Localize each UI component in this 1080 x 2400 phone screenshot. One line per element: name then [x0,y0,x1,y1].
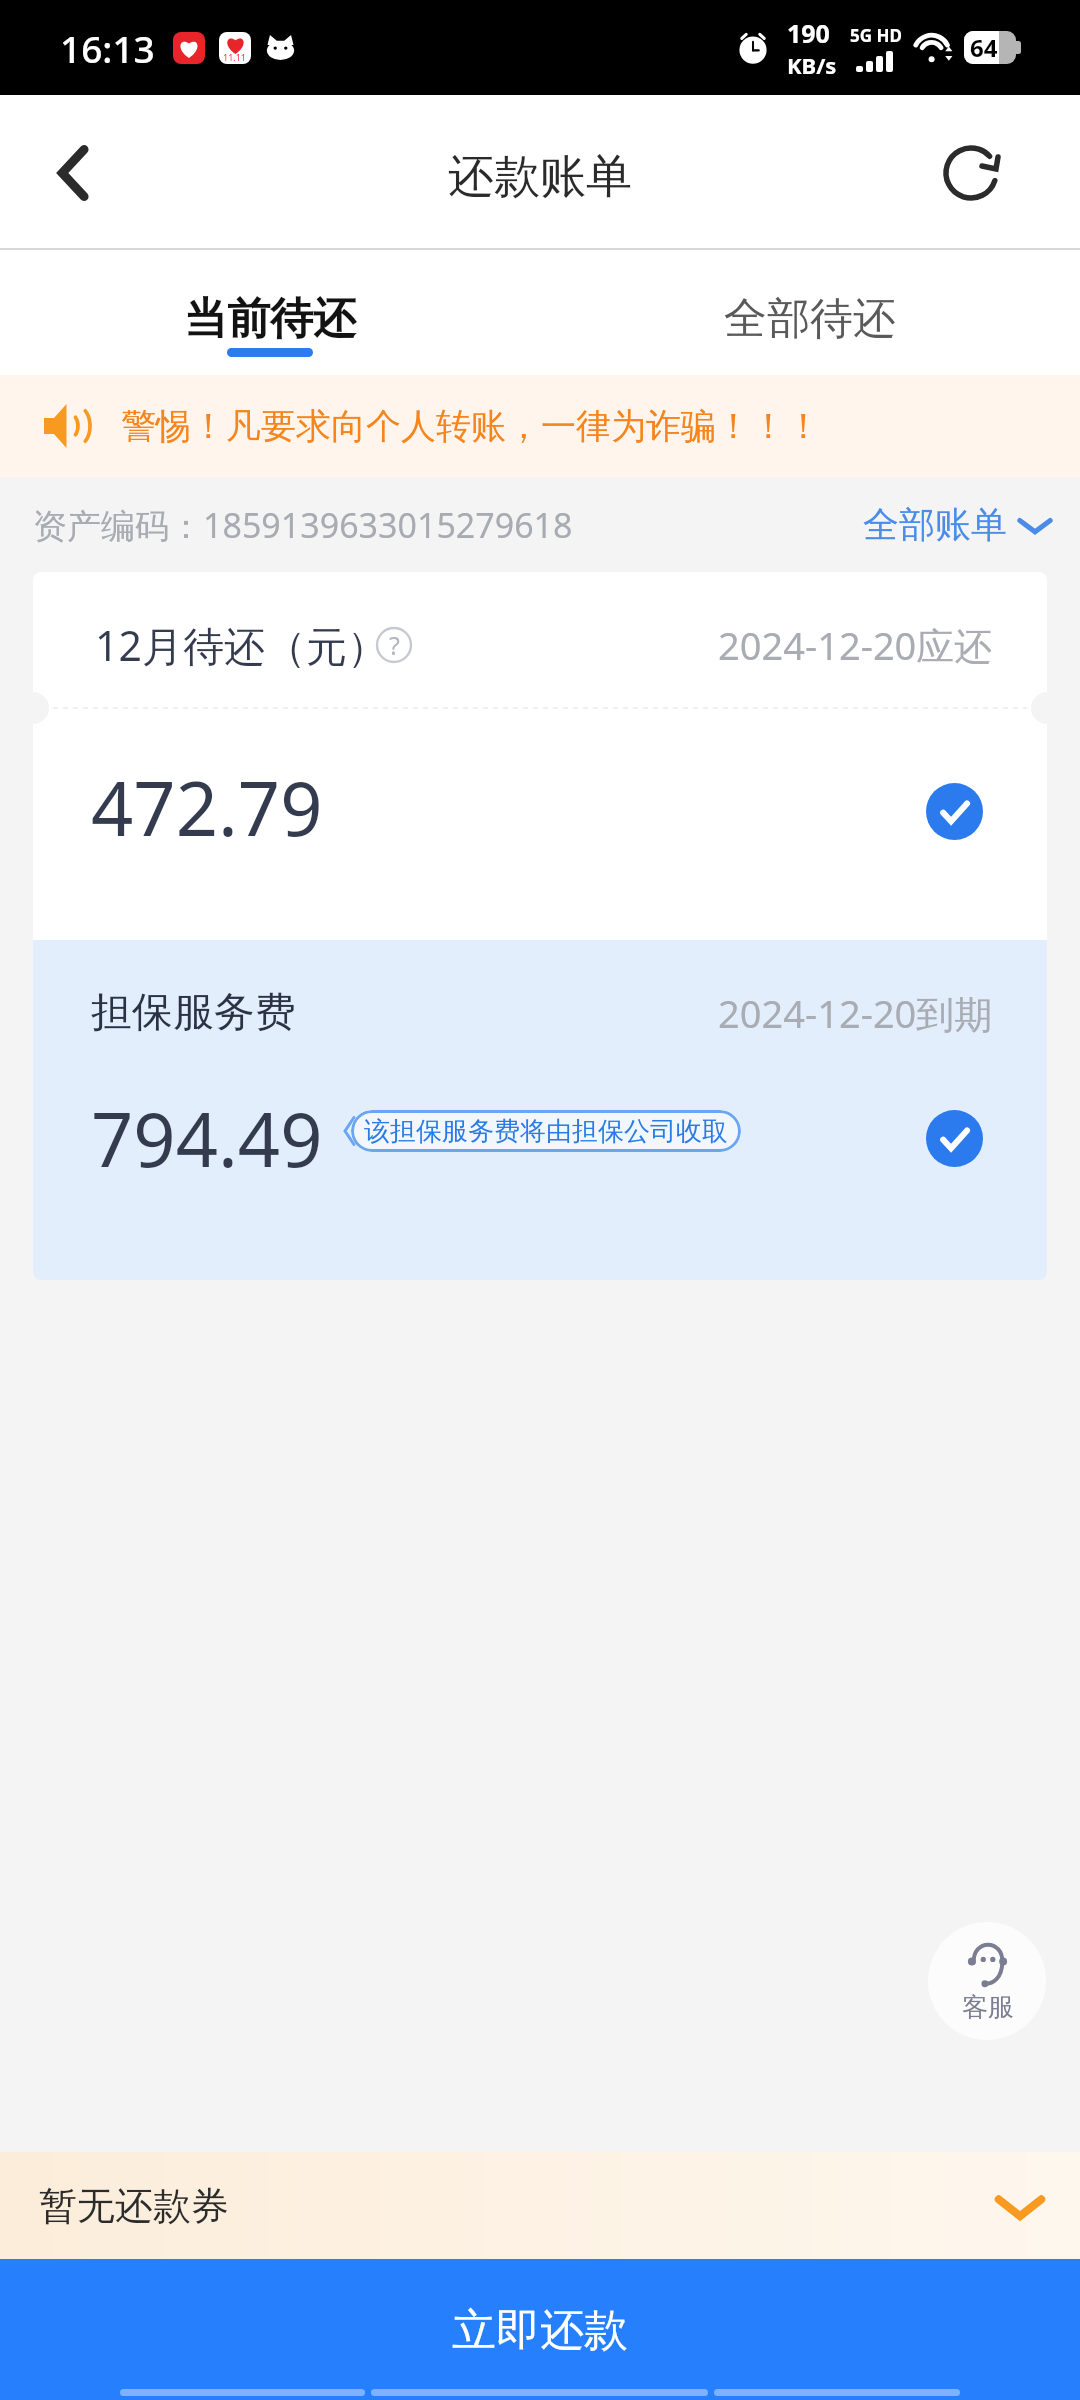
button[interactable]: 暂无还款券 [0,2152,1080,2259]
staticText: KB/s [787,50,837,80]
staticText: 资产编码：1859139633015279618 [33,502,573,548]
button[interactable]: 全部账单 [863,502,1054,547]
staticText: 该担保服务费将由担保公司收取 [364,1115,728,1148]
button[interactable]: 全部待还 [540,250,1080,375]
staticText: 暂无还款券 [39,2182,229,2230]
button[interactable]: 当前待还 [0,250,540,375]
staticText: 立即还款 [452,2303,628,2358]
staticText: 5G HD [850,24,902,47]
staticText: 472.79 [91,757,323,858]
staticText: 全部待还 [724,292,896,346]
staticText: 当前待还 [184,292,356,346]
button[interactable]: 12月待还（元） [33,572,1047,940]
staticText: 警惕！凡要求向个人转账，一律为诈骗！！！ [121,404,821,448]
button[interactable]: 担保服务费 [33,940,1047,1280]
staticText: 16:13 [60,23,155,73]
staticText: 2024-12-20应还 [718,619,993,671]
staticText: 190 [787,16,830,50]
staticText: 全部账单 [863,502,1007,547]
button[interactable]: 立即还款 [0,2259,1080,2400]
staticText: 64 [970,31,998,64]
staticText: 还款账单 [448,148,632,206]
staticText: ? [389,628,400,662]
button[interactable]: 返回 [26,125,122,221]
staticText: 2024-12-20到期 [718,987,993,1039]
button[interactable]: 刷新 [933,125,1029,221]
staticText: 担保服务费 [91,987,296,1039]
button[interactable]: 客服 [928,1922,1046,2040]
staticText: 12月待还（元） [95,617,388,673]
staticText: 794.49 [91,1088,323,1189]
staticText: 客服 [962,1991,1014,2024]
staticText: 11.11 [223,51,247,63]
